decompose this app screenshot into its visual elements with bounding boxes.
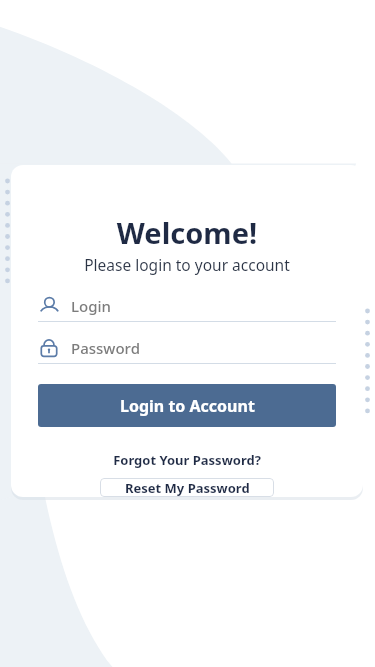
other: Password lock bbox=[38, 337, 60, 359]
staticText: Forgot Your Password? bbox=[38, 451, 336, 469]
staticText: Welcome! bbox=[38, 213, 336, 252]
button[interactable]: Password lock bbox=[38, 332, 336, 364]
staticText: Login to Account bbox=[120, 395, 255, 417]
staticText: Please login to your account bbox=[38, 254, 336, 275]
button[interactable]: Reset My Password bbox=[100, 478, 274, 497]
staticText: Reset My Password bbox=[125, 479, 250, 497]
staticText: Password bbox=[71, 338, 140, 358]
other: User bbox=[38, 295, 60, 317]
button[interactable]: User bbox=[38, 290, 336, 322]
button[interactable]: Login to Account bbox=[38, 384, 336, 427]
staticText: Login bbox=[71, 296, 111, 316]
